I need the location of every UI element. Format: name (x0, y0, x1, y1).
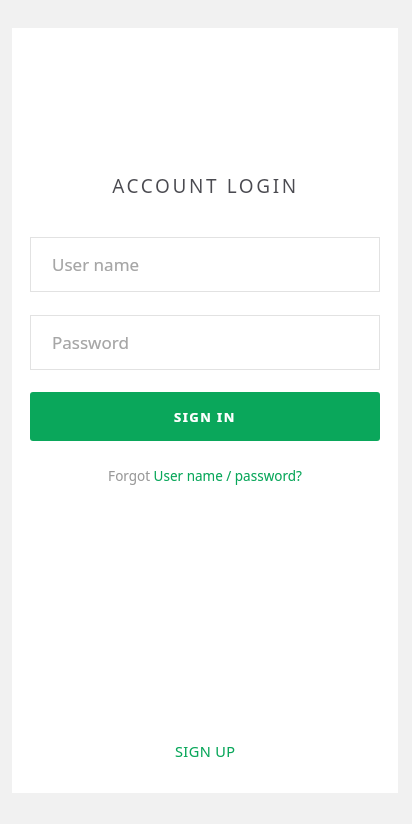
staticText: ACCOUNT LOGIN (112, 173, 299, 199)
staticText: SIGN UP (175, 741, 236, 761)
button[interactable]: Password (30, 315, 380, 370)
button[interactable]: SIGN IN (30, 392, 380, 441)
staticText: SIGN IN (174, 408, 236, 426)
button[interactable]: SIGN UP (165, 737, 246, 765)
button[interactable]: User name (30, 237, 380, 292)
staticText: Forgot User name / password? (108, 467, 302, 485)
button[interactable]: Forgot User name / password? (102, 465, 308, 487)
staticText: User name (52, 253, 140, 276)
staticText: Password (52, 331, 129, 354)
